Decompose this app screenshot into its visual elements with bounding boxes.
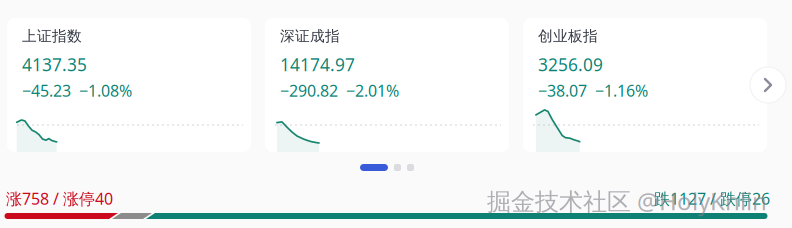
button[interactable]: Page 1 <box>360 164 388 171</box>
button[interactable]: Page 2 <box>394 164 401 171</box>
staticText: 上证指数 <box>22 27 82 45</box>
staticText: 创业板指 <box>538 27 598 45</box>
staticText: 涨758 / 涨停40 <box>6 188 113 209</box>
button[interactable]: Page 3 <box>407 164 414 171</box>
staticText: −290.82 −2.01% <box>280 80 399 101</box>
staticText: 跌1127 / 跌停26 <box>654 188 770 209</box>
staticText: 掘金技术社区 @HolyKnlin <box>487 185 767 217</box>
button[interactable]: 上证指数 <box>7 18 251 152</box>
staticText: 14174.97 <box>280 53 355 76</box>
staticText: −45.23 −1.08% <box>22 80 132 101</box>
staticText: 4137.35 <box>22 53 87 76</box>
staticText: 深证成指 <box>280 27 340 45</box>
button[interactable]: Next <box>749 66 787 104</box>
staticText: 3256.09 <box>538 53 603 76</box>
staticText: −38.07 −1.16% <box>538 80 648 101</box>
button[interactable]: 创业板指 <box>523 18 767 152</box>
button[interactable]: 深证成指 <box>265 18 509 152</box>
